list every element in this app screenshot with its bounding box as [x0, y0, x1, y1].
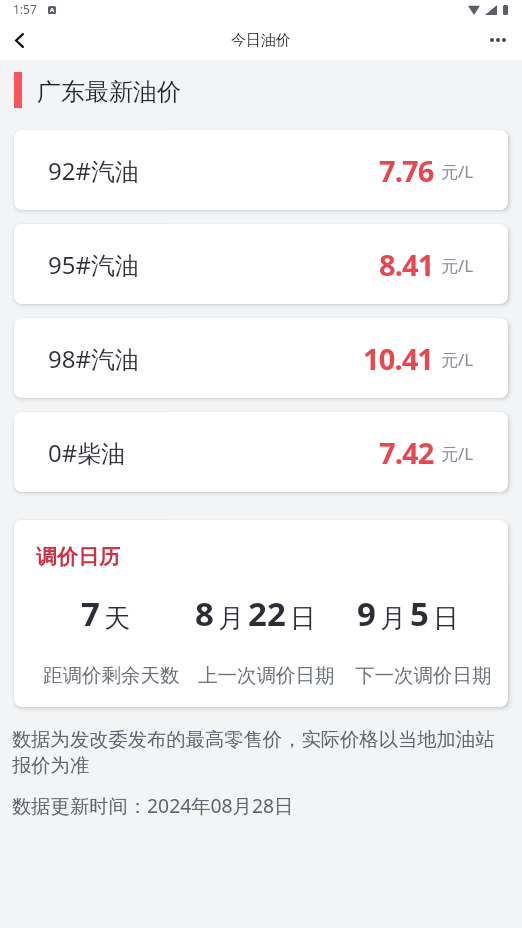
staticText: 距调价剩余天数 [43, 663, 180, 688]
staticText: 天 [104, 602, 130, 635]
staticText: 7.76 [379, 151, 434, 190]
staticText: 95#汽油 [48, 248, 139, 281]
staticText: 月 [380, 602, 406, 635]
staticText: 92#汽油 [48, 154, 139, 187]
staticText: 1:57 [13, 1, 37, 17]
staticText: 下一次调价日期 [355, 663, 492, 688]
staticText: A [50, 6, 55, 14]
staticText: 元/L [441, 442, 474, 465]
staticText: 元/L [441, 160, 474, 183]
staticText: 8 [195, 591, 214, 636]
button[interactable]: 0#柴油 [14, 412, 508, 492]
staticText: 月 [218, 602, 244, 635]
staticText: 0#柴油 [48, 436, 126, 469]
staticText: 7.42 [379, 433, 434, 472]
staticText: 日 [433, 602, 459, 635]
staticText: 98#汽油 [48, 342, 139, 375]
staticText: 广东最新油价 [37, 77, 181, 107]
staticText: 10.41 [363, 339, 434, 378]
staticText: 22 [248, 591, 286, 636]
staticText: 上一次调价日期 [198, 663, 335, 688]
staticText: 元/L [441, 348, 474, 371]
staticText: 今日油价 [231, 31, 291, 50]
button[interactable]: 95#汽油 [14, 224, 508, 304]
button[interactable]: More options [474, 24, 522, 60]
button[interactable]: 98#汽油 [14, 318, 508, 398]
staticText: 元/L [441, 254, 474, 277]
button[interactable]: 92#汽油 [14, 130, 508, 210]
staticText: 日 [290, 602, 316, 635]
staticText: 7 [81, 591, 100, 636]
staticText: 数据更新时间：2024年08月28日 [12, 792, 294, 818]
staticText: 9 [357, 591, 376, 636]
staticText: 5 [410, 591, 429, 636]
button[interactable]: Back [0, 24, 40, 60]
staticText: 数据为发改委发布的最高零售价，实际价格以当地加油站 报价为准 [12, 727, 495, 778]
staticText: 调价日历 [36, 544, 120, 570]
staticText: 8.41 [379, 245, 434, 284]
